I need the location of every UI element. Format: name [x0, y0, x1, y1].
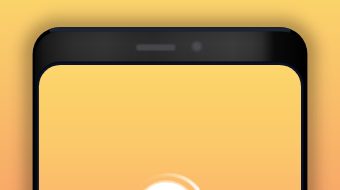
button[interactable]: Phone splash screen mockup: [0, 0, 340, 190]
